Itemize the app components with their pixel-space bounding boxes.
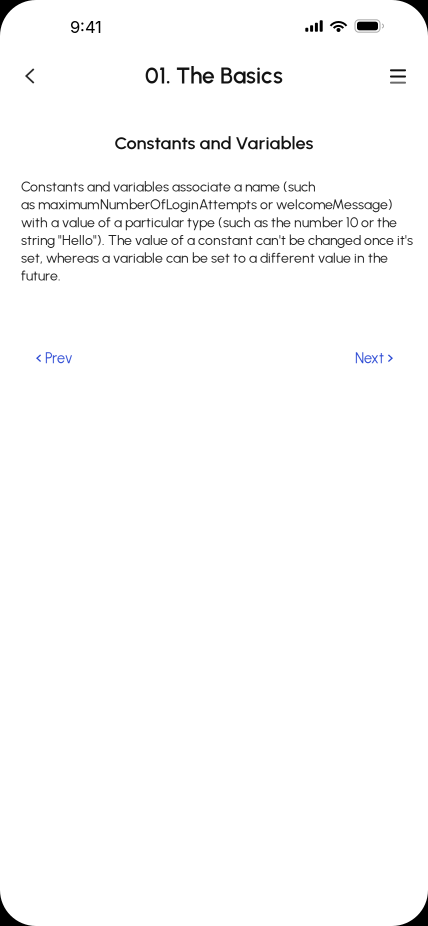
staticText: Constants and Variables <box>114 132 313 154</box>
button[interactable]: Next <box>355 345 392 372</box>
staticText: Prev <box>45 350 72 367</box>
button[interactable]: Menu <box>376 54 420 100</box>
staticText: 9:41 <box>70 17 102 37</box>
staticText: Next <box>355 350 384 367</box>
staticText: future. <box>21 267 61 284</box>
button[interactable]: Back <box>8 54 52 101</box>
staticText: string "Hello"). The value of a constant… <box>21 232 413 248</box>
button[interactable]: Prev <box>37 345 72 372</box>
staticText: with a value of a particular type (such … <box>21 214 397 231</box>
staticText: 01. The Basics <box>145 62 283 89</box>
staticText: as maximumNumberOfLoginAttempts or welco… <box>21 196 393 213</box>
staticText: Constants and variables associate a name… <box>21 178 316 195</box>
staticText: set, whereas a variable can be set to a … <box>21 249 388 266</box>
